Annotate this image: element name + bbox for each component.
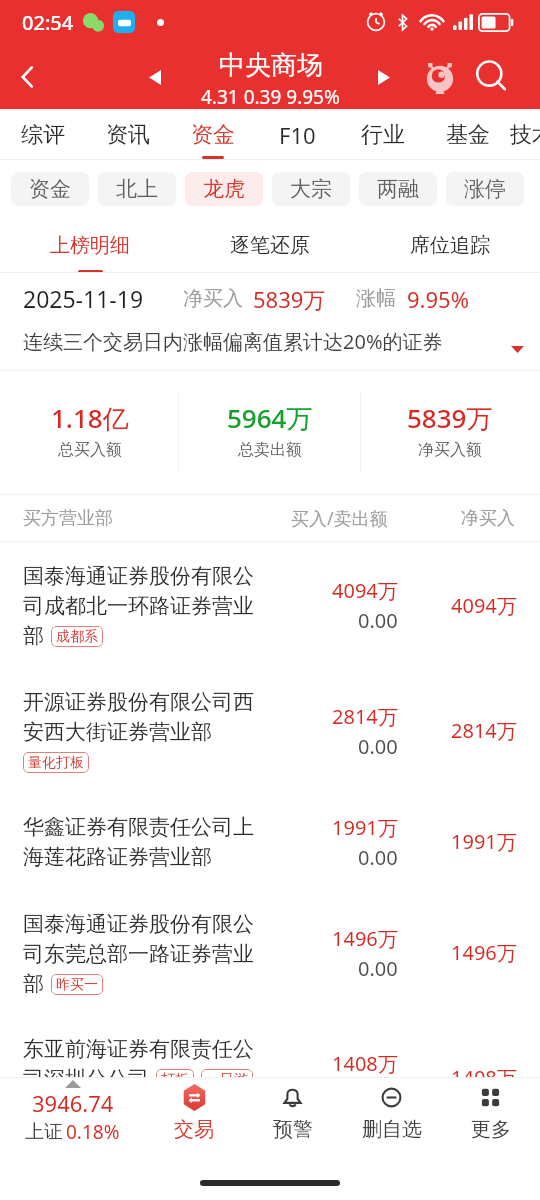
- staticText: 综评: [21, 121, 65, 149]
- button[interactable]: 返回: [0, 49, 56, 105]
- button[interactable]: 交易: [145, 1077, 243, 1161]
- staticText: 上证: [25, 1120, 63, 1144]
- button[interactable]: 资金: [170, 109, 255, 160]
- button[interactable]: 国泰海通证券股份有限公: [0, 890, 540, 1015]
- staticText: 司深圳分公司: [23, 1066, 149, 1092]
- staticText: 交易: [174, 1117, 214, 1142]
- staticText: 净买入额: [418, 440, 482, 460]
- staticText: 1991万: [332, 814, 398, 841]
- staticText: 上榜明细: [50, 233, 130, 258]
- staticText: 成都系: [56, 628, 98, 646]
- staticText: 中央商场: [219, 49, 323, 82]
- staticText: 1991万: [451, 828, 517, 855]
- staticText: 预警: [273, 1117, 313, 1142]
- button[interactable]: 5839万: [360, 371, 540, 495]
- staticText: 司东莞总部一路证券营业: [23, 941, 254, 967]
- staticText: 删自选: [362, 1117, 422, 1142]
- staticText: F10: [279, 120, 316, 150]
- button[interactable]: 技术: [510, 109, 540, 160]
- staticText: 涨幅: [356, 286, 396, 311]
- staticText: 4.31 0.39 9.95%: [201, 84, 340, 110]
- button[interactable]: 基金: [425, 109, 510, 160]
- button[interactable]: 更多: [441, 1077, 540, 1161]
- staticText: 9.95%: [407, 284, 469, 314]
- button[interactable]: F10: [255, 109, 340, 160]
- button[interactable]: 涨停: [446, 172, 524, 206]
- staticText: 大宗: [290, 176, 332, 202]
- staticText: 席位追踪: [410, 233, 490, 258]
- staticText: 华鑫证券有限责任公司上: [23, 814, 254, 840]
- button[interactable]: 1.18亿: [0, 371, 180, 495]
- staticText: 0.00: [358, 733, 398, 760]
- staticText: 02:54: [22, 9, 74, 36]
- staticText: 量化打板: [28, 754, 84, 772]
- button[interactable]: 席位追踪: [360, 217, 540, 273]
- staticText: 龙虎: [203, 176, 245, 202]
- staticText: 逐笔还原: [230, 233, 310, 258]
- button[interactable]: 国泰海通证券股份有限公: [0, 542, 540, 668]
- staticText: 部: [23, 971, 44, 997]
- staticText: 国泰海通证券股份有限公: [23, 563, 254, 589]
- button[interactable]: 下一只: [366, 59, 402, 95]
- staticText: 总买入额: [58, 440, 122, 460]
- staticText: 行业: [361, 121, 405, 149]
- button[interactable]: 资金: [11, 172, 89, 206]
- staticText: 涨停: [464, 176, 506, 202]
- staticText: 0.18%: [66, 1119, 120, 1145]
- staticText: 2814万: [451, 717, 517, 744]
- button[interactable]: 预警: [243, 1077, 342, 1161]
- button[interactable]: 上榜明细: [0, 217, 180, 273]
- button[interactable]: 北上: [98, 172, 176, 206]
- button[interactable]: 综评: [0, 109, 85, 160]
- button[interactable]: 2025-11-19: [0, 273, 540, 371]
- staticText: 1496万: [332, 925, 398, 952]
- staticText: 1408万: [451, 1064, 517, 1091]
- staticText: 0.00: [358, 607, 398, 634]
- button[interactable]: 两融: [359, 172, 437, 206]
- button[interactable]: 开源证券股份有限公司西: [0, 668, 540, 793]
- staticText: 0.00: [358, 844, 398, 871]
- staticText: 一日游: [206, 1071, 248, 1089]
- staticText: 买方营业部: [23, 507, 113, 530]
- staticText: 部: [23, 623, 44, 649]
- staticText: 开源证券股份有限公司西: [23, 689, 254, 715]
- staticText: 5839万: [407, 400, 493, 436]
- button[interactable]: 大宗: [272, 172, 350, 206]
- staticText: 资金: [29, 176, 71, 202]
- staticText: 基金: [446, 121, 490, 149]
- staticText: 1.18亿: [51, 400, 129, 436]
- staticText: 北上: [116, 176, 158, 202]
- button[interactable]: 3946.74: [0, 1077, 145, 1161]
- staticText: 2814万: [332, 703, 398, 730]
- staticText: 资讯: [106, 121, 150, 149]
- staticText: 1496万: [451, 939, 517, 966]
- staticText: 资金: [191, 121, 235, 149]
- button[interactable]: 搜索: [466, 51, 518, 103]
- button[interactable]: 东亚前海证券有限责任公: [0, 1015, 540, 1140]
- button[interactable]: 上一只: [137, 59, 173, 95]
- button[interactable]: 智能盯盘: [414, 51, 466, 103]
- staticText: 3946.74: [32, 1088, 114, 1118]
- staticText: 昨买一: [56, 976, 98, 994]
- button[interactable]: 删自选: [342, 1077, 441, 1161]
- staticText: 0.00: [358, 955, 398, 982]
- staticText: 国泰海通证券股份有限公: [23, 911, 254, 937]
- staticText: 4094万: [332, 577, 398, 604]
- button[interactable]: 5964万: [180, 371, 360, 495]
- staticText: 连续三个交易日内涨幅偏离值累计达20%的证券: [23, 328, 443, 355]
- button[interactable]: 行业: [340, 109, 425, 160]
- button[interactable]: 华鑫证券有限责任公司上: [0, 793, 540, 890]
- staticText: 买入/卖出额: [291, 506, 388, 531]
- button[interactable]: 逐笔还原: [180, 217, 360, 273]
- staticText: 总卖出额: [238, 440, 302, 460]
- staticText: 安西大街证券营业部: [23, 719, 212, 745]
- staticText: 更多: [471, 1117, 511, 1142]
- button[interactable]: 龙虎: [185, 172, 263, 206]
- staticText: 东亚前海证券有限责任公: [23, 1036, 254, 1062]
- staticText: 海莲花路证券营业部: [23, 844, 212, 870]
- button[interactable]: 资讯: [85, 109, 170, 160]
- staticText: 5964万: [227, 400, 313, 436]
- staticText: 净买入: [461, 507, 515, 530]
- staticText: 2025-11-19: [23, 283, 144, 314]
- staticText: 1408万: [332, 1050, 398, 1077]
